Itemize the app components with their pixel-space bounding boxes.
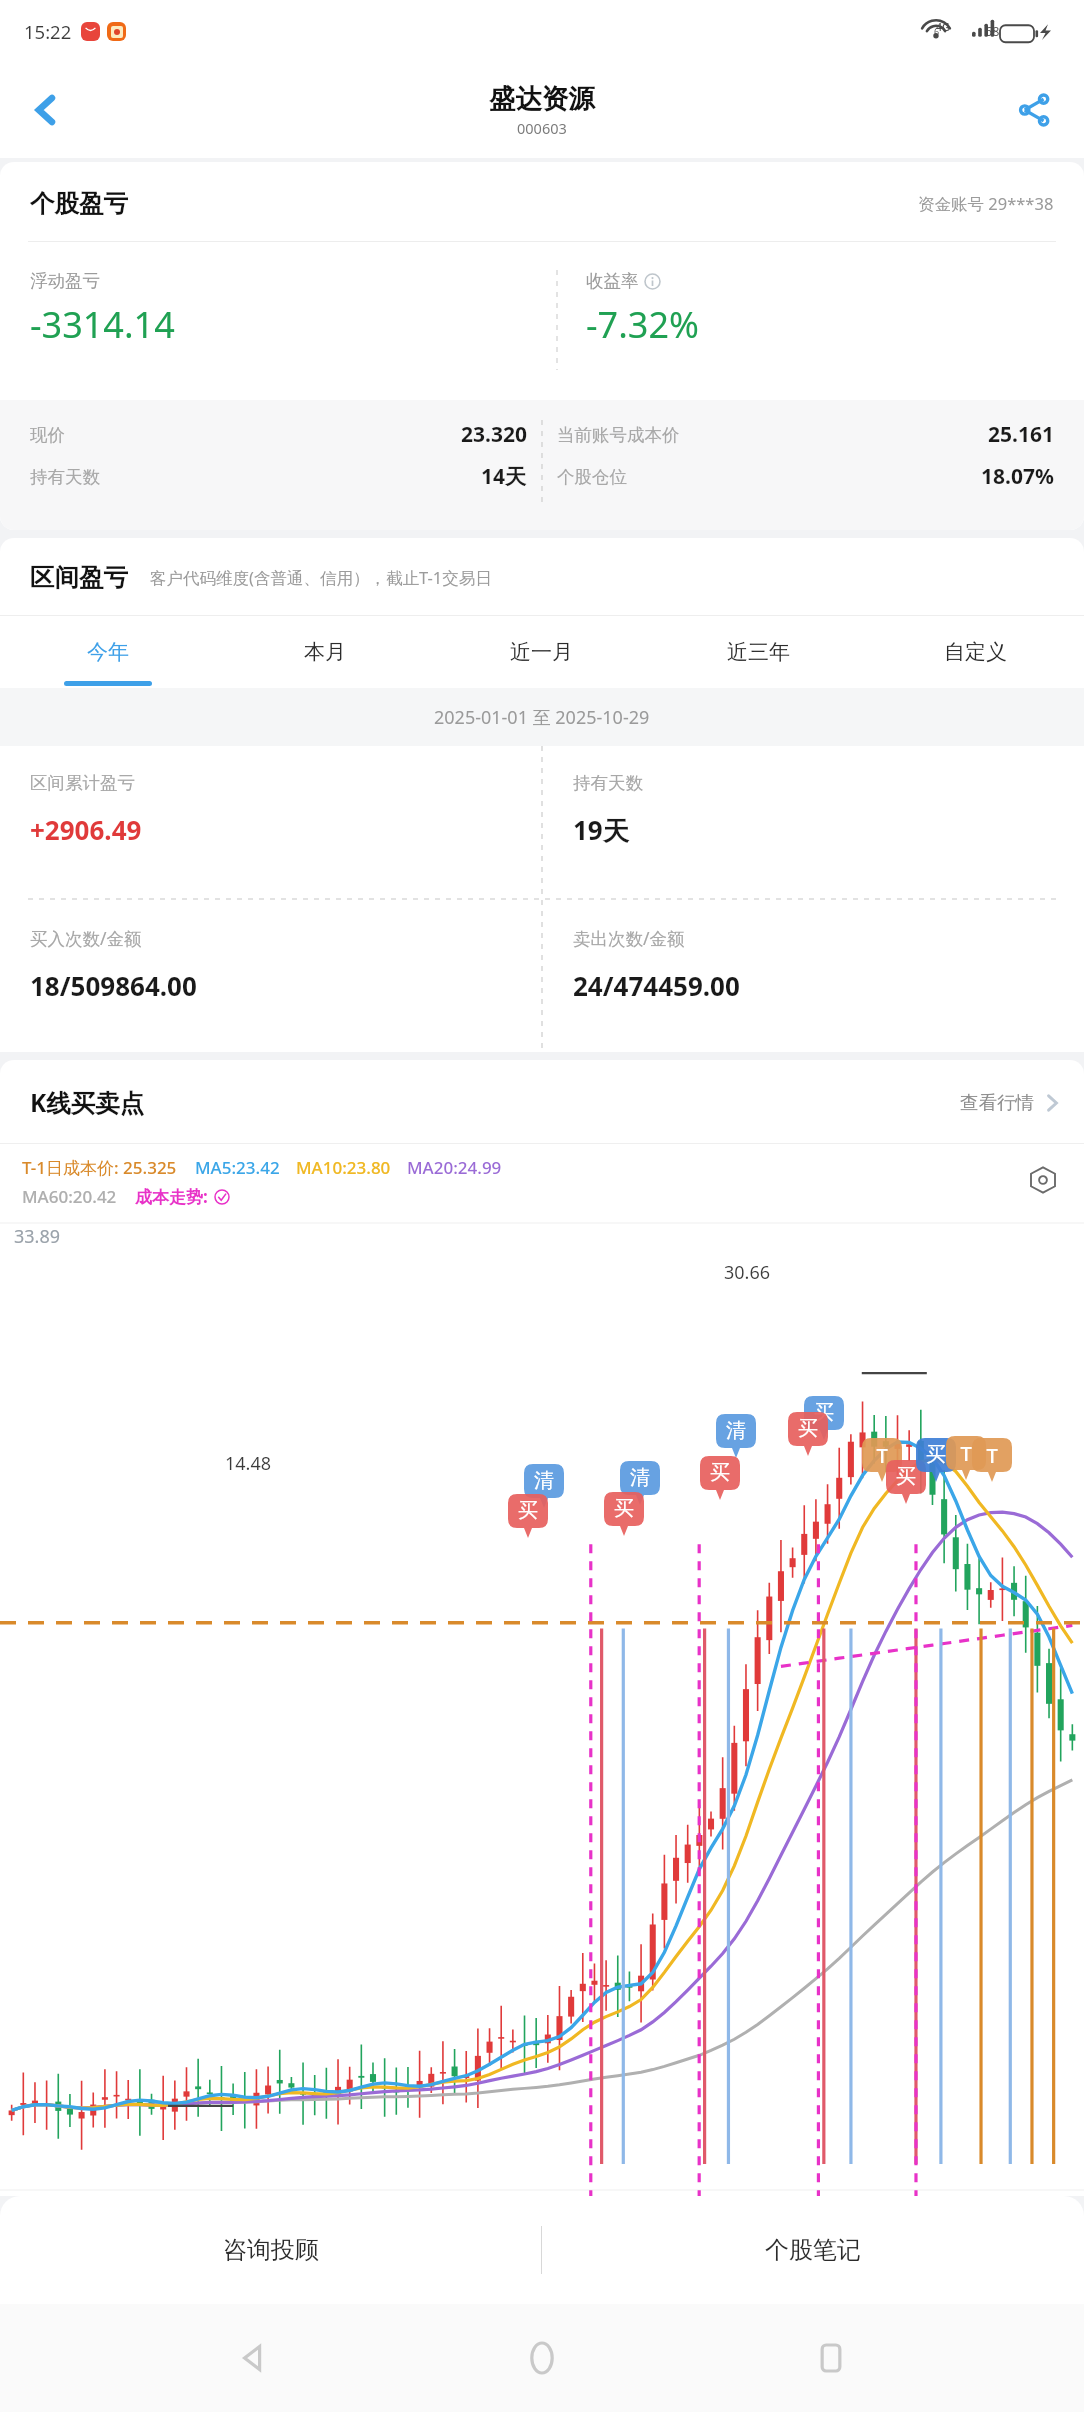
staticText: 19天	[573, 812, 629, 848]
staticText: 清	[534, 1468, 554, 1493]
button[interactable]: 咨询投顾	[0, 2196, 541, 2304]
staticText: 15:22	[24, 19, 72, 44]
button[interactable]: Back	[217, 2322, 289, 2394]
button[interactable]: 近三年	[650, 616, 867, 688]
staticText: 18.07%	[981, 462, 1054, 491]
staticText: 成本走势:	[135, 1185, 208, 1208]
staticText: 近三年	[727, 639, 790, 665]
staticText: 持有天数	[30, 466, 100, 488]
staticText: 30.66	[724, 1260, 771, 1285]
staticText: 18/509864.00	[30, 968, 197, 1003]
staticText: 资金账号 29***38	[918, 192, 1054, 215]
staticText: 盛达资源	[489, 82, 595, 115]
staticText: 买	[926, 1442, 946, 1467]
staticText: 买	[798, 1416, 818, 1441]
staticText: 个股盈亏	[30, 188, 128, 219]
staticText: T	[960, 1440, 972, 1467]
staticText: 23.320	[461, 420, 527, 449]
staticText: 个股仓位	[557, 466, 627, 488]
staticText: 近一月	[510, 639, 573, 665]
staticText: 今年	[87, 639, 129, 665]
staticText: 6	[934, 25, 940, 37]
button[interactable]: Share	[998, 74, 1070, 146]
staticText: 收益率	[586, 270, 639, 292]
staticText: 区间盈亏	[30, 562, 128, 593]
staticText: 浮动盈亏	[30, 270, 100, 292]
staticText: 持有天数	[573, 772, 643, 794]
staticText: 14天	[481, 462, 527, 491]
staticText: 68	[985, 23, 1000, 40]
staticText: MA60:20.42	[22, 1185, 117, 1208]
button[interactable]: 自定义	[867, 616, 1084, 688]
staticText: +2906.49	[30, 812, 142, 847]
button[interactable]: 查看行情	[960, 1091, 1062, 1114]
button[interactable]: 本月	[216, 616, 433, 688]
staticText: 2025-01-01 至 2025-10-29	[434, 705, 650, 730]
button[interactable]: Chart settings	[1020, 1157, 1066, 1203]
staticText: MA10:23.80	[296, 1156, 391, 1179]
staticText: T	[876, 1442, 888, 1469]
staticText: 25.161	[988, 420, 1054, 449]
staticText: 买	[896, 1464, 916, 1489]
staticText: 买入次数/金额	[30, 926, 142, 950]
staticText: 清	[726, 1418, 746, 1443]
staticText: 自定义	[944, 639, 1007, 665]
staticText: 买	[814, 1400, 834, 1425]
staticText: 本月	[304, 639, 346, 665]
staticText: 咨询投顾	[223, 2235, 319, 2265]
button[interactable]: 近一月	[433, 616, 650, 688]
staticText: 000603	[517, 118, 567, 138]
staticText: 个股笔记	[765, 2235, 861, 2265]
button[interactable]: Recent apps	[795, 2322, 867, 2394]
staticText: 卖出次数/金额	[573, 926, 685, 950]
staticText: MA5:23.42	[195, 1156, 280, 1179]
staticText: 33.89	[14, 1224, 61, 1249]
staticText: 买	[710, 1460, 730, 1485]
staticText: 14.48	[225, 1451, 272, 1476]
staticText: 4G	[936, 20, 950, 34]
staticText: 查看行情	[960, 1091, 1034, 1114]
staticText: 买	[614, 1496, 634, 1521]
button[interactable]: 今年	[0, 616, 216, 688]
button[interactable]: 个股笔记	[542, 2196, 1084, 2304]
staticText: 买	[518, 1498, 538, 1523]
staticText: -3314.14	[30, 300, 175, 349]
staticText: T-1日成本价: 25.325	[22, 1156, 177, 1179]
staticText: T	[986, 1442, 998, 1469]
staticText: -7.32%	[586, 300, 699, 349]
button[interactable]: Back	[10, 74, 82, 146]
staticText: 24/474459.00	[573, 968, 740, 1003]
button[interactable]: Home	[506, 2322, 578, 2394]
staticText: 清	[630, 1465, 650, 1490]
staticText: 区间累计盈亏	[30, 772, 135, 794]
staticText: MA20:24.99	[407, 1156, 502, 1179]
staticText: 客户代码维度(含普通、信用），截止T-1交易日	[150, 566, 492, 589]
staticText: K线买卖点	[30, 1086, 145, 1119]
staticText: 当前账号成本价	[557, 424, 680, 446]
staticText: 现价	[30, 424, 65, 446]
